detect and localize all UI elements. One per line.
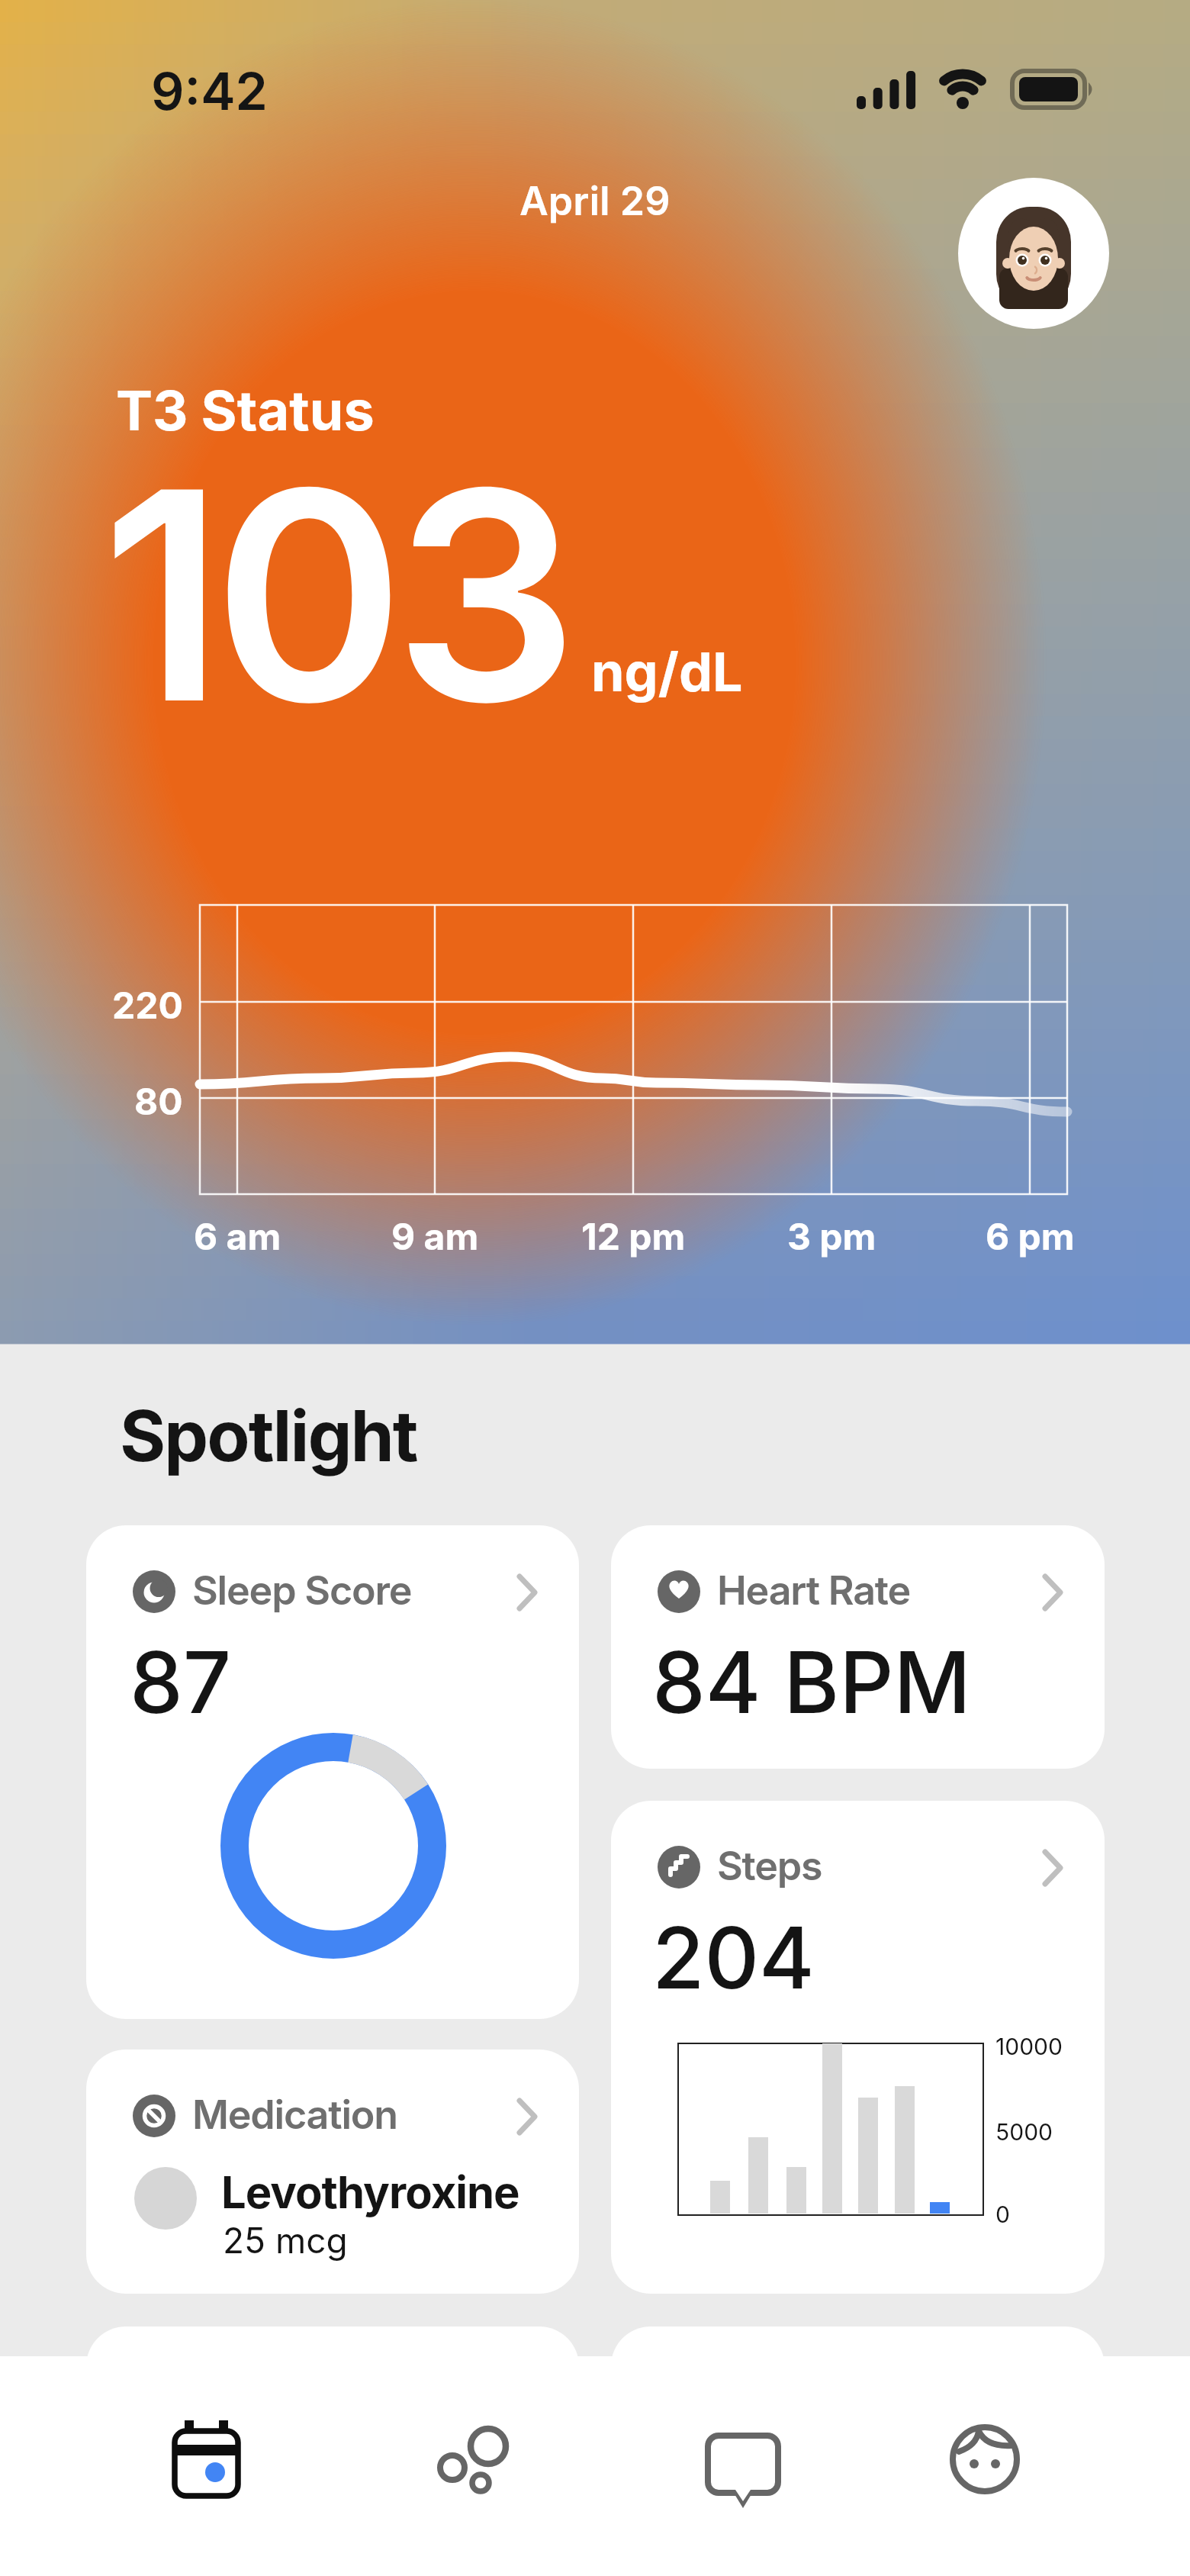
staticText: 204	[652, 1906, 815, 2008]
staticText: 6 pm	[986, 1214, 1075, 1258]
staticText: 80	[134, 1079, 183, 1123]
staticText: 12 pm	[581, 1214, 686, 1258]
staticText: 84 BPM	[652, 1631, 971, 1733]
staticText: 5000	[995, 2118, 1053, 2146]
staticText: Levothyroxine	[221, 2165, 519, 2219]
staticText: 103	[101, 420, 568, 771]
staticText: 9 am	[391, 1214, 479, 1258]
button[interactable]	[958, 178, 1109, 329]
button[interactable]	[939, 2413, 1031, 2505]
button[interactable]	[611, 1525, 1105, 1769]
staticText: Spotlight	[120, 1393, 417, 1478]
staticText: 25 mcg	[223, 2219, 348, 2262]
staticText: Medication	[192, 2091, 397, 2139]
staticText: Heart Rate	[717, 1567, 911, 1615]
button[interactable]	[162, 2413, 253, 2504]
button[interactable]	[697, 2413, 789, 2504]
staticText: 220	[112, 983, 183, 1027]
button[interactable]	[423, 2416, 514, 2507]
staticText: 10000	[995, 2033, 1063, 2060]
button[interactable]	[611, 1801, 1105, 2294]
button[interactable]	[86, 2050, 579, 2294]
staticText: April 29	[519, 177, 671, 225]
staticText: 6 am	[194, 1214, 281, 1258]
staticText: T3 Status	[116, 377, 375, 443]
staticText: Steps	[717, 1842, 822, 1890]
staticText: ng/dL	[591, 639, 743, 704]
staticText: 9:42	[151, 60, 268, 122]
staticText: 3 pm	[787, 1214, 876, 1258]
staticText: 0	[995, 2201, 1010, 2228]
button[interactable]	[86, 1525, 579, 2019]
staticText: Sleep Score	[192, 1567, 412, 1615]
staticText: 87	[130, 1631, 232, 1733]
